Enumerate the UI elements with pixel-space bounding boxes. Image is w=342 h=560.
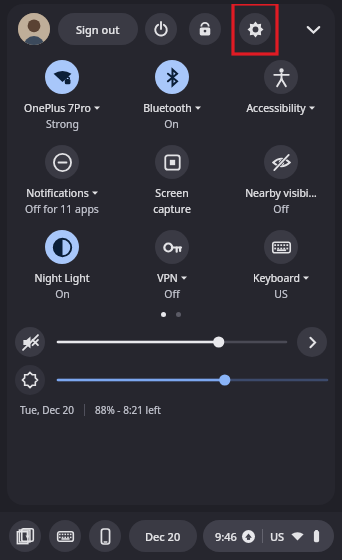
staticText: Strong (46, 117, 79, 131)
staticText: Nearby visibi… (245, 186, 317, 200)
button[interactable]: Night Light (7, 230, 117, 301)
button[interactable]: Brightness level (58, 367, 327, 393)
staticText: US (270, 529, 285, 544)
staticText: Screen (155, 186, 189, 200)
staticText: Tue, Dec 20 (20, 403, 74, 417)
button[interactable]: Mute (15, 327, 45, 357)
button[interactable]: Bluetooth (117, 60, 226, 131)
staticText: Sign out (76, 22, 120, 37)
staticText: Off for 11 apps (25, 202, 99, 216)
staticText: Dec 20 (145, 529, 181, 544)
staticText: OnePlus 7Pro (24, 101, 91, 115)
button[interactable]: 9:46 (203, 520, 334, 552)
staticText: Accessibility (246, 101, 306, 115)
staticText: US (274, 287, 288, 301)
staticText: Bluetooth (143, 101, 192, 115)
button[interactable]: Dec 20 (129, 520, 197, 552)
button[interactable]: Launcher (9, 520, 41, 552)
staticText: 88% - 8:21 left (95, 403, 161, 417)
button[interactable]: Settings (233, 4, 277, 54)
button[interactable]: Notifications (7, 145, 117, 216)
staticText: Night Light (34, 271, 90, 285)
button[interactable]: Brightness (15, 365, 45, 395)
button[interactable]: Lock (189, 13, 221, 45)
button[interactable]: Volume (58, 329, 286, 355)
button[interactable]: Phone hub (89, 520, 121, 552)
button[interactable]: Screen (117, 145, 226, 216)
staticText: Off (164, 287, 180, 301)
button[interactable]: Power (145, 13, 177, 45)
button[interactable]: Expand audio settings (297, 327, 327, 357)
button[interactable]: OnePlus 7Pro (7, 60, 117, 131)
staticText: Keyboard (253, 271, 300, 285)
button[interactable]: Accessibility (226, 60, 335, 115)
staticText: On (55, 287, 70, 301)
button[interactable]: Nearby visibi… (226, 145, 335, 216)
button[interactable]: Sign out (58, 13, 138, 45)
button[interactable]: Keyboard (49, 520, 81, 552)
button[interactable]: Keyboard (226, 230, 335, 301)
staticText: On (164, 117, 179, 131)
button[interactable]: Account (18, 13, 50, 45)
staticText: 9:46 (215, 529, 237, 544)
staticText: Off (273, 202, 289, 216)
staticText: VPN (157, 271, 178, 285)
button[interactable]: Collapse (297, 13, 329, 45)
staticText: capture (153, 202, 191, 216)
staticText: Notifications (26, 186, 89, 200)
button[interactable]: VPN (117, 230, 226, 301)
